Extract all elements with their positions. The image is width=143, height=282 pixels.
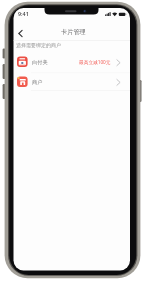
- staticText: 卡片管理: [61, 28, 86, 36]
- staticText: 选择需要绑定的商户: [16, 42, 61, 48]
- button[interactable]: [14, 73, 130, 91]
- staticText: 商户: [32, 79, 43, 86]
- staticText: 9:41: [18, 10, 29, 17]
- button[interactable]: [14, 26, 28, 40]
- button[interactable]: [14, 53, 130, 73]
- staticText: 最高立减100元: [79, 59, 111, 65]
- staticText: 白付美: [32, 59, 48, 66]
